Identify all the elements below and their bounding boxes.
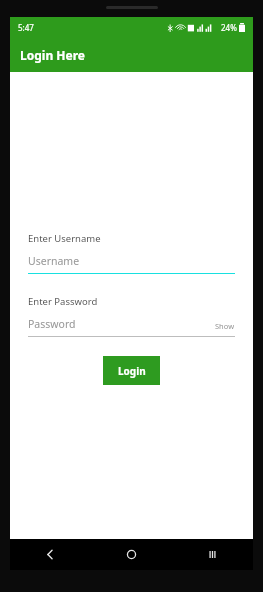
button[interactable]: Login	[103, 356, 160, 385]
button[interactable]: Username	[28, 254, 235, 274]
staticText: 5:47	[18, 22, 34, 33]
button[interactable]: Recent apps	[172, 539, 253, 570]
button[interactable]: Login Here	[10, 37, 253, 72]
button[interactable]: Back	[10, 539, 91, 570]
button[interactable]: Home	[91, 539, 172, 570]
staticText: Enter Password	[28, 295, 98, 308]
staticText: Login	[118, 364, 146, 378]
staticText: Login Here	[20, 47, 85, 63]
staticText: Show	[215, 321, 235, 331]
staticText: Enter Username	[28, 232, 101, 245]
staticText: Username	[28, 254, 80, 268]
staticText: 24%	[221, 22, 237, 33]
staticText: Password	[28, 317, 215, 331]
button[interactable]: Password	[28, 317, 235, 337]
button[interactable]: Show	[215, 321, 235, 331]
